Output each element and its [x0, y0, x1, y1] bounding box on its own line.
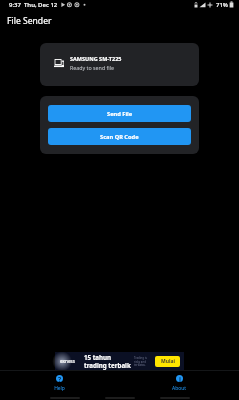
staticText: Thu, Dec 12 — [24, 1, 58, 9]
staticText: ? — [58, 375, 62, 382]
button[interactable]: About — [119, 371, 239, 395]
other: Help — [56, 375, 63, 382]
staticText: About — [172, 385, 186, 392]
button[interactable]: exness — [55, 352, 184, 370]
staticText: exness — [60, 358, 76, 364]
button[interactable]: SAMSUNG SM-T225 — [40, 43, 199, 86]
staticText: i — [179, 375, 181, 382]
staticText: Help — [54, 385, 65, 392]
staticText: Mulai — [161, 358, 175, 365]
staticText: Scan QR Code — [100, 133, 139, 141]
staticText: Ready to send file — [70, 64, 115, 71]
staticText: trading terbaik — [84, 361, 131, 369]
button[interactable]: Help — [0, 371, 119, 395]
button[interactable]: Scan QR Code — [48, 128, 191, 145]
staticText: 15 tahun — [84, 353, 112, 361]
staticText: 71% — [216, 1, 228, 9]
other: About — [176, 375, 183, 382]
staticText: File Sender — [7, 15, 52, 27]
staticText: Send File — [107, 110, 133, 118]
staticText: 9:37 — [9, 1, 21, 9]
staticText: SAMSUNG SM-T225 — [70, 55, 122, 62]
staticText: Trading is risky and terbatas. — [134, 356, 147, 366]
button[interactable]: Send File — [48, 105, 191, 122]
